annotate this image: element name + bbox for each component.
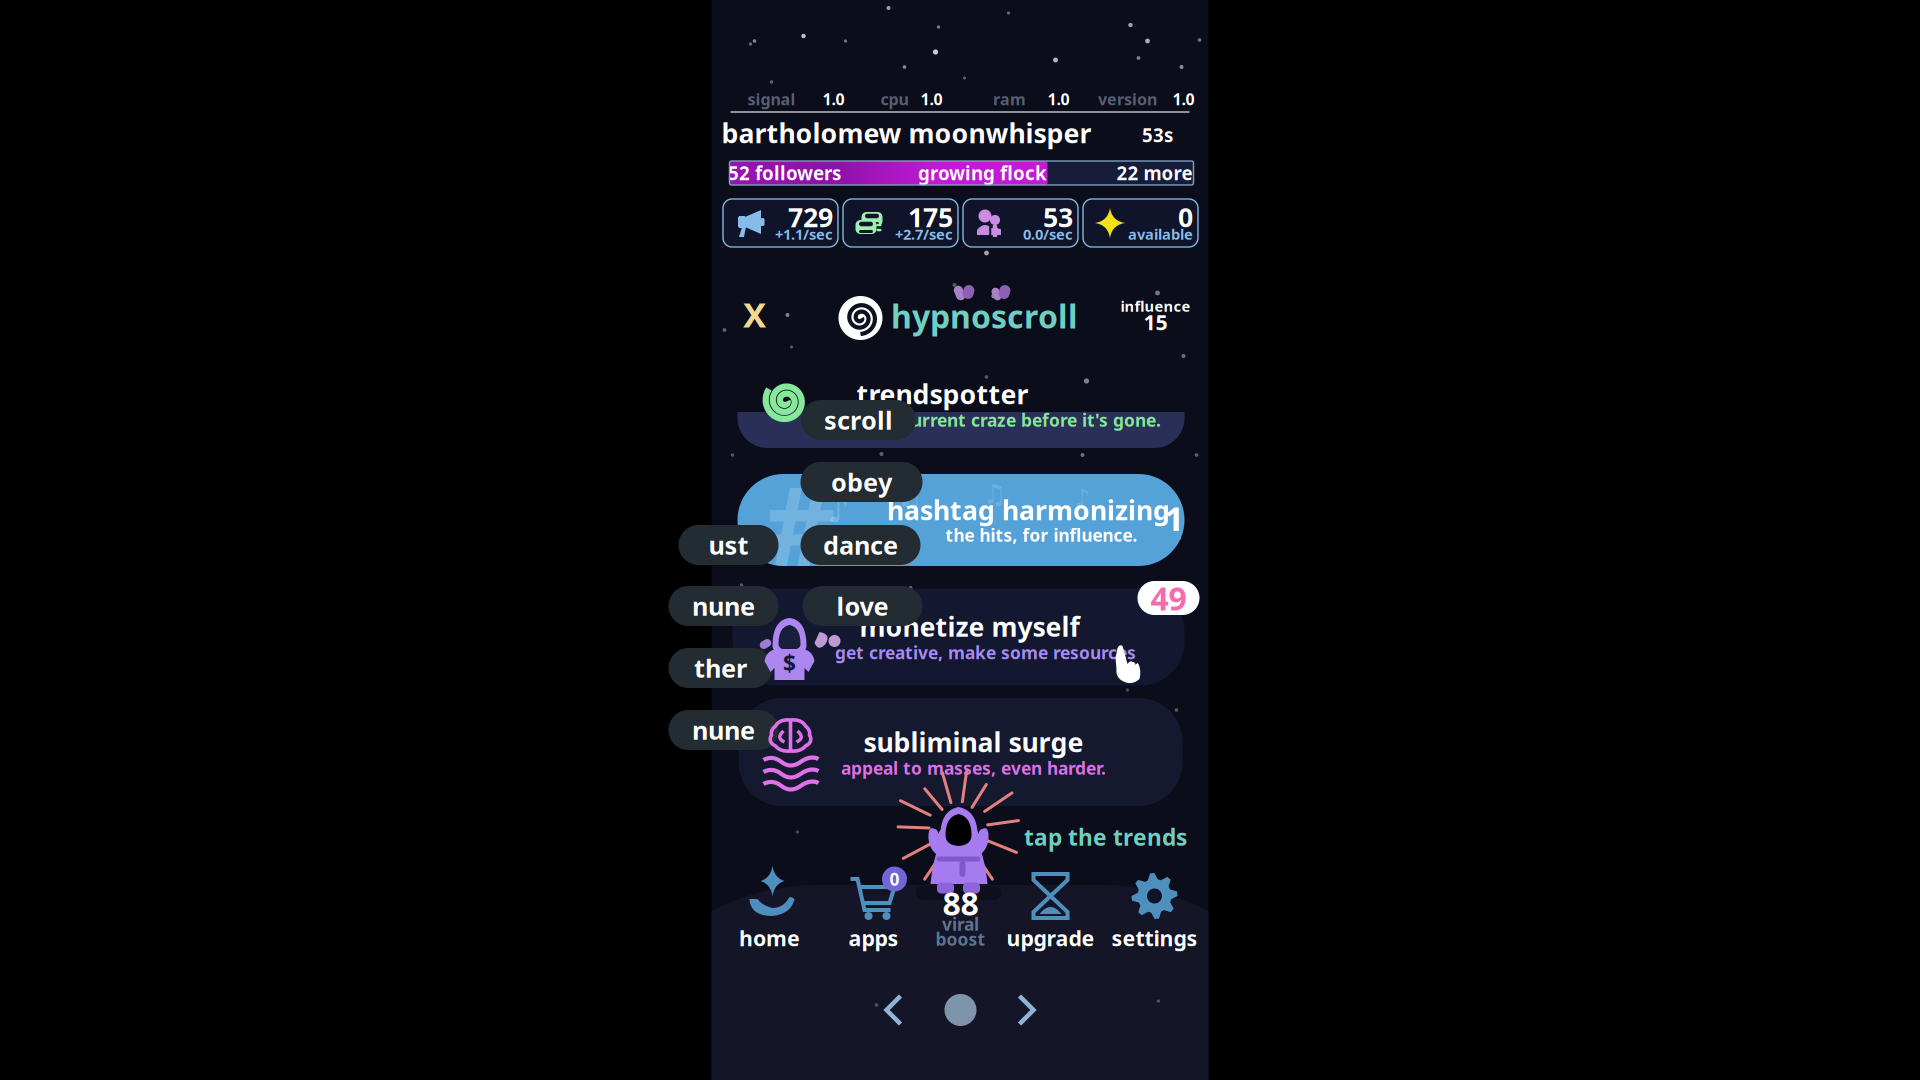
staticText: 0.0/sec [1023,224,1073,244]
button[interactable]: 53 [963,199,1078,247]
button[interactable]: hashtag harmonizing [737,474,1184,566]
staticText: # [763,450,835,598]
staticText: X [743,291,766,337]
staticText: 22 more [1116,161,1192,185]
staticText: 1.0 [1047,88,1069,110]
button[interactable]: 729 [723,199,838,247]
button[interactable]: subliminal surge [738,698,1182,806]
staticText: boost [935,927,985,950]
staticText: $ [783,648,796,678]
staticText: viral [942,912,979,935]
staticText: 88 [942,882,978,924]
staticText: +2.7/sec [895,224,953,244]
button[interactable]: upgrade [995,856,1105,952]
staticText: appeal to masses, even harder. [841,756,1106,779]
button[interactable]: monetize myself [732,588,1184,685]
staticText: 0 [1178,199,1193,235]
staticText: version [1098,88,1157,110]
staticText: growing flock [918,161,1047,185]
button[interactable]: home [719,856,819,952]
staticText: ust [708,528,748,562]
staticText: bartholomew moonwhisper [721,115,1091,151]
staticText: ♫ [982,479,1006,509]
staticText: scroll [824,403,893,437]
staticText: hypnoscroll [891,295,1078,337]
staticText: ♪ [1074,484,1090,512]
staticText: 53 [1043,199,1073,235]
staticText: hashtag harmonizing [887,492,1170,528]
staticText: +1.1/sec [775,224,833,244]
button[interactable]: 88 [918,856,1002,952]
staticText: 53s [1142,123,1173,147]
staticText: influence [1120,296,1190,316]
staticText: cpu [880,88,908,110]
staticText: current craze before it's gone. [902,408,1161,431]
button[interactable]: settings [1099,856,1209,952]
staticText: ♫ [896,479,922,513]
button[interactable]: 0 [1083,199,1198,247]
staticText: settings [1111,924,1197,952]
staticText: home [739,924,800,952]
staticText: get creative, make some resources [835,641,1136,664]
staticText: ram [993,88,1026,110]
staticText: apps [848,924,898,952]
staticText: dance [823,528,898,562]
staticText: ther [694,651,747,685]
staticText: love [836,589,888,623]
button[interactable]: Previous [878,990,910,1030]
staticText: ♪ [827,490,849,530]
staticText: signal [747,88,795,110]
staticText: nune [692,589,755,623]
staticText: 1 [1164,495,1184,541]
button[interactable]: Close app [732,292,776,336]
staticText: monetize myself [859,609,1079,644]
button[interactable]: 175 [843,199,958,247]
staticText: obey [831,465,892,499]
button[interactable]: Next [1009,990,1041,1030]
staticText: 49 [1150,577,1186,619]
staticText: 0 [889,867,899,890]
button[interactable]: 0 [823,856,923,952]
staticText: trendspotter [856,376,1028,412]
staticText: 15 [1143,308,1167,336]
staticText: nune [692,713,755,747]
staticText: the hits, for influence. [945,523,1137,546]
button[interactable]: trendspotter [737,412,1184,448]
staticText: 1.0 [920,88,942,110]
staticText: 175 [908,199,953,235]
staticText: tap the trends [1024,822,1187,852]
staticText: available [1128,224,1193,244]
staticText: subliminal surge [863,724,1083,760]
staticText: 52 followers [728,161,841,185]
staticText: 1.0 [1172,88,1194,110]
staticText: 729 [788,199,833,235]
staticText: upgrade [1006,924,1094,952]
staticText: 1.0 [822,88,844,110]
